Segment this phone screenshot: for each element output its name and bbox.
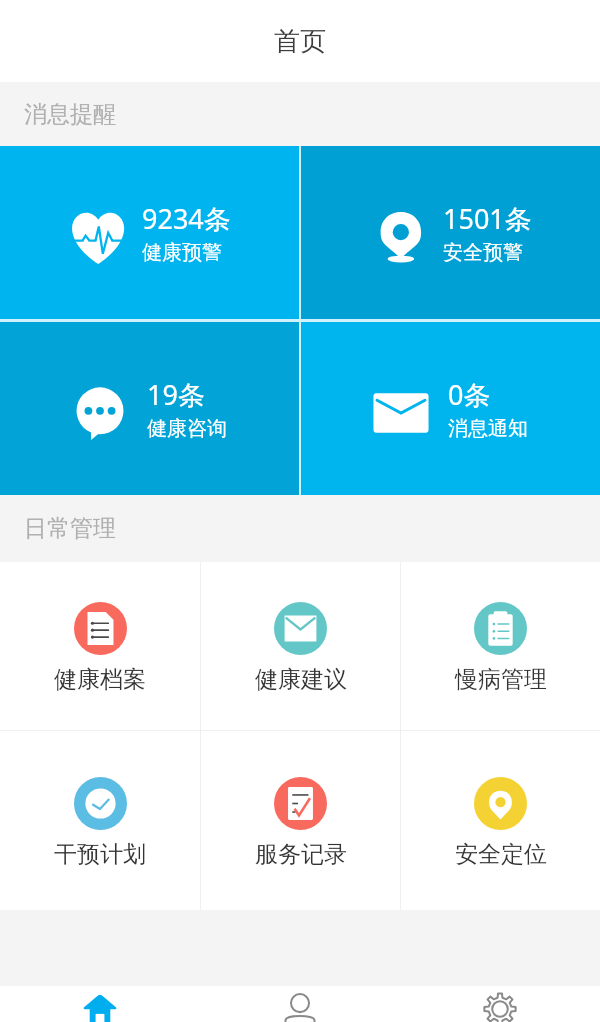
staticText: 健康建议 [255, 665, 347, 694]
button[interactable]: 0条 [301, 322, 600, 495]
staticText: 健康预警 [142, 240, 222, 265]
staticText: 安全预警 [443, 240, 523, 265]
button[interactable]: 9234条 [0, 146, 299, 319]
staticText: 19条 [147, 376, 205, 413]
button[interactable]: Settings [400, 986, 600, 1022]
button[interactable]: 服务记录 [201, 731, 400, 910]
staticText: 健康档案 [54, 665, 146, 694]
staticText: 9234条 [142, 200, 231, 237]
button[interactable]: 干预计划 [0, 731, 200, 910]
staticText: 健康咨询 [147, 416, 227, 441]
staticText: 0条 [448, 376, 491, 413]
staticText: 慢病管理 [455, 665, 547, 694]
staticText: 服务记录 [255, 840, 347, 869]
staticText: 1501条 [443, 200, 532, 237]
button[interactable]: 19条 [0, 322, 299, 495]
staticText: 日常管理 [24, 514, 116, 543]
staticText: 干预计划 [54, 840, 146, 869]
staticText: 安全定位 [455, 840, 547, 869]
button[interactable]: 安全定位 [401, 731, 600, 910]
button[interactable]: 慢病管理 [401, 562, 600, 730]
staticText: 首页 [274, 25, 326, 58]
staticText: 消息提醒 [24, 100, 116, 129]
button[interactable]: Home [0, 986, 200, 1022]
staticText: 消息通知 [448, 416, 528, 441]
button[interactable]: 健康档案 [0, 562, 200, 730]
button[interactable]: Profile [200, 986, 400, 1022]
button[interactable]: 1501条 [301, 146, 600, 319]
button[interactable]: 健康建议 [201, 562, 400, 730]
